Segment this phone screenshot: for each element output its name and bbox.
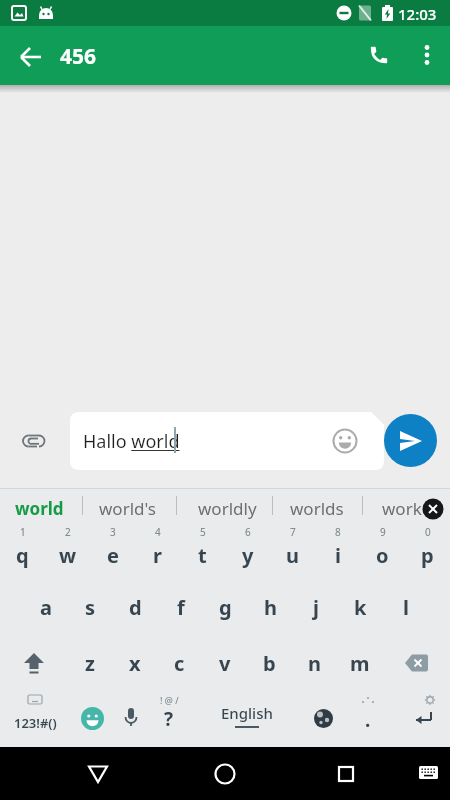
button[interactable] [16,42,46,72]
staticText: 0 [425,525,431,539]
staticText: c [174,650,185,677]
staticText: 456 [60,42,97,71]
staticText: a [40,594,52,621]
button[interactable]: . [346,691,390,747]
button[interactable]: z [67,635,112,691]
staticText: English [221,703,273,723]
staticText: p [421,542,434,569]
staticText: 6 [245,525,251,539]
button[interactable] [304,696,342,740]
button[interactable] [382,635,450,691]
button[interactable]: n [292,635,337,691]
staticText: 4 [155,525,161,539]
button[interactable] [414,758,444,788]
staticText: 123!#() [14,714,57,732]
button[interactable]: v [202,635,247,691]
button[interactable] [412,40,442,70]
button[interactable]: d [113,579,158,635]
staticText: 8 [335,525,341,539]
button[interactable]: b [247,635,292,691]
staticText: f [177,594,185,621]
staticText: b [263,650,276,677]
button[interactable]: m [337,635,382,691]
button[interactable]: 2 [45,523,90,579]
staticText: h [264,594,277,621]
button[interactable]: ! @ / [150,691,188,747]
button[interactable]: English [192,691,302,747]
staticText: 9 [380,525,386,539]
staticText: m [350,650,370,677]
staticText: u [286,542,299,569]
staticText: worked [382,497,442,520]
button[interactable]: 1 [0,523,45,579]
button[interactable]: 7 [270,523,315,579]
button[interactable]: f [158,579,203,635]
button[interactable]: g [203,579,248,635]
staticText: 7 [290,525,296,539]
button[interactable]: 5 [180,523,225,579]
button[interactable]: Hallo world [70,412,384,470]
staticText: z [85,650,95,677]
staticText: v [219,650,231,677]
button[interactable]: k [338,579,383,635]
button[interactable] [384,414,437,467]
button[interactable]: 4 [135,523,180,579]
staticText: q [16,542,29,569]
button[interactable]: j [293,579,338,635]
staticText: o [376,542,389,569]
button[interactable]: 8 [315,523,360,579]
button[interactable]: 0 [405,523,450,579]
button[interactable] [0,635,67,691]
button[interactable] [20,427,48,455]
staticText: d [129,594,142,621]
button[interactable]: 3 [90,523,135,579]
button[interactable]: 9 [360,523,405,579]
button[interactable] [394,691,450,747]
staticText: 5 [200,525,206,539]
button[interactable]: 123!#() [4,691,66,747]
staticText: worldly [198,497,257,520]
button[interactable] [72,696,112,740]
staticText: y [242,542,254,569]
staticText: e [107,542,119,569]
staticText: k [354,594,367,621]
staticText: world [15,497,64,520]
button[interactable]: h [248,579,293,635]
staticText: world's [99,497,156,520]
staticText: l [403,594,409,621]
staticText: s [85,594,96,621]
staticText: g [219,594,232,621]
button[interactable]: s [68,579,113,635]
staticText: Hallo world [83,429,180,454]
staticText: j [313,594,319,621]
button[interactable]: 6 [225,523,270,579]
button[interactable] [82,758,114,790]
staticText: r [153,542,162,569]
staticText: t [198,542,207,569]
button[interactable]: x [112,635,157,691]
button[interactable]: c [157,635,202,691]
button[interactable] [112,696,150,740]
staticText: 1 [20,525,26,539]
button[interactable]: a [23,579,68,635]
staticText: . [365,707,371,733]
button[interactable] [364,40,394,70]
button[interactable] [330,758,362,790]
staticText: 3 [110,525,116,539]
staticText: 12:03 [398,4,437,24]
button[interactable]: l [383,579,428,635]
staticText: ! @ / [160,694,179,706]
staticText: x [129,650,141,677]
button[interactable] [209,758,241,790]
staticText: i [335,542,341,569]
staticText: n [308,650,321,677]
staticText: 2 [65,525,71,539]
staticText: worlds [290,497,344,520]
staticText: w [59,542,77,569]
staticText: ? [164,706,174,732]
